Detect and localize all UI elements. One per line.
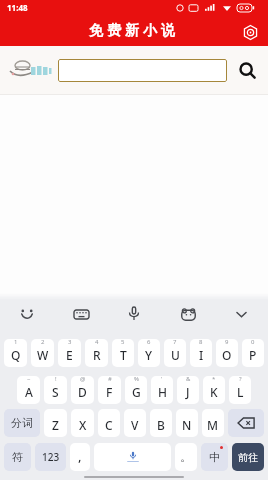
staticText: ~ — [27, 376, 31, 383]
staticText: 9 — [225, 339, 229, 346]
staticText: 分词 — [11, 416, 33, 430]
button[interactable]: 7 — [164, 339, 186, 367]
button[interactable]: ! — [44, 376, 67, 404]
staticText: , — [78, 447, 82, 465]
staticText: S — [52, 384, 59, 400]
button[interactable]: C — [98, 409, 120, 437]
button[interactable]: ~ — [17, 376, 40, 404]
staticText: Z — [52, 417, 59, 433]
staticText: H — [158, 384, 167, 400]
staticText: B — [157, 417, 165, 433]
staticText: O — [222, 347, 232, 363]
button[interactable]: # — [98, 376, 121, 404]
staticText: 免费新小说 — [87, 22, 177, 40]
staticText: C — [105, 417, 113, 433]
button[interactable]: * — [203, 376, 225, 404]
button[interactable] — [177, 303, 199, 325]
staticText: Q — [11, 347, 21, 363]
staticText: P — [249, 347, 257, 363]
staticText: 11:48 — [7, 2, 28, 13]
button[interactable]: 1 — [4, 339, 27, 367]
button[interactable]: 0 — [242, 339, 264, 367]
button[interactable]: B — [150, 409, 172, 437]
staticText: E — [66, 347, 73, 363]
staticText: W — [37, 347, 49, 363]
staticText: @ — [80, 376, 86, 383]
staticText: 前往 — [238, 451, 258, 464]
button[interactable]: 中 — [201, 443, 228, 471]
button[interactable]: 4 — [85, 339, 108, 367]
button[interactable]: 5 — [112, 339, 134, 367]
staticText: 8 — [199, 339, 203, 346]
staticText: 4 — [95, 339, 99, 346]
button[interactable] — [58, 59, 227, 82]
button[interactable]: 前往 — [232, 443, 264, 471]
staticText: 。 — [180, 449, 192, 464]
staticText: 1 — [14, 339, 18, 346]
button[interactable]: ' — [151, 376, 173, 404]
staticText: 5 — [121, 339, 125, 346]
staticText: # — [108, 376, 112, 383]
staticText: K — [210, 384, 218, 400]
staticText: % — [134, 376, 139, 383]
button[interactable]: , — [70, 443, 90, 471]
staticText: ' — [161, 376, 163, 383]
staticText: 7 — [173, 339, 177, 346]
staticText: & — [186, 376, 191, 383]
button[interactable]: 9 — [216, 339, 238, 367]
staticText: L — [237, 384, 244, 400]
staticText: 3 — [68, 339, 72, 346]
button[interactable]: M — [202, 409, 224, 437]
staticText: F — [106, 384, 113, 400]
staticText: U — [171, 347, 180, 363]
button[interactable]: 123 — [35, 443, 66, 471]
button[interactable]: 。 — [175, 443, 197, 471]
button[interactable]: N — [176, 409, 198, 437]
button[interactable] — [70, 303, 92, 325]
button[interactable]: 2 — [31, 339, 54, 367]
button[interactable] — [123, 303, 145, 325]
button[interactable]: & — [177, 376, 199, 404]
staticText: ? — [239, 376, 242, 383]
staticText: M — [207, 417, 219, 433]
staticText: D — [78, 384, 87, 400]
staticText: 2 — [41, 339, 45, 346]
button[interactable] — [16, 303, 38, 325]
staticText: * — [212, 376, 216, 383]
button[interactable]: 3 — [58, 339, 81, 367]
staticText: G — [132, 384, 141, 400]
button[interactable]: X — [71, 409, 94, 437]
staticText: R — [93, 347, 101, 363]
button[interactable]: 6 — [138, 339, 160, 367]
staticText: A — [25, 384, 33, 400]
staticText: T — [120, 347, 127, 363]
button[interactable] — [236, 59, 258, 81]
staticText: 符 — [12, 450, 23, 464]
staticText: ! — [55, 376, 57, 383]
staticText: 0 — [251, 339, 255, 346]
button[interactable]: V — [124, 409, 146, 437]
button[interactable]: 8 — [190, 339, 212, 367]
button[interactable] — [228, 409, 264, 437]
staticText: 6 — [147, 339, 151, 346]
staticText: V — [131, 417, 139, 433]
staticText: N — [182, 417, 192, 433]
button[interactable]: 符 — [4, 443, 31, 471]
button[interactable] — [94, 443, 171, 471]
button[interactable] — [241, 23, 259, 41]
button[interactable]: 分词 — [4, 409, 40, 437]
button[interactable]: Z — [44, 409, 67, 437]
button[interactable]: % — [125, 376, 147, 404]
staticText: X — [79, 417, 87, 433]
button[interactable]: @ — [71, 376, 94, 404]
staticText: Y — [145, 347, 153, 363]
staticText: I — [199, 347, 204, 363]
staticText: 123 — [42, 450, 60, 464]
button[interactable] — [230, 303, 252, 325]
staticText: J — [186, 384, 190, 400]
staticText: 中 — [209, 450, 220, 464]
button[interactable]: ? — [229, 376, 251, 404]
